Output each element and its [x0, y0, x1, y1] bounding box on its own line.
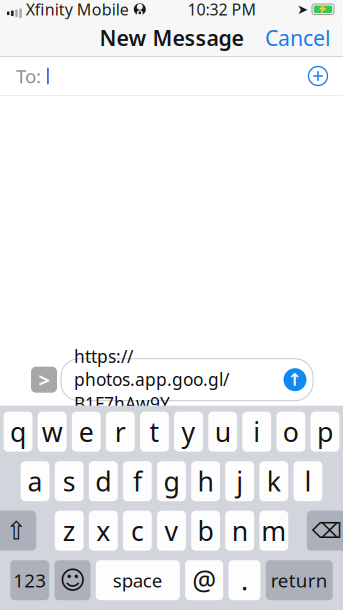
staticText: g	[163, 463, 179, 499]
button[interactable]: space	[96, 560, 180, 600]
staticText: s	[63, 463, 76, 499]
staticText: ⚡	[317, 4, 329, 15]
button[interactable]: q	[4, 412, 32, 452]
button[interactable]: return	[266, 560, 333, 600]
button[interactable]: Delete	[307, 511, 343, 551]
staticText: .	[241, 562, 248, 598]
button[interactable]: s	[55, 461, 84, 501]
staticText: c	[131, 513, 144, 548]
staticText: 123	[13, 568, 46, 593]
staticText: o	[283, 414, 299, 449]
staticText: space	[113, 568, 163, 593]
button[interactable]: l	[293, 461, 322, 501]
button[interactable]: Send	[280, 365, 310, 395]
button[interactable]: g	[157, 461, 186, 501]
staticText: q	[10, 414, 26, 449]
button[interactable]: a	[21, 461, 49, 501]
staticText: https://photos.app.goo.gl/	[74, 345, 229, 391]
button[interactable]: @	[185, 560, 223, 600]
button[interactable]: t	[140, 412, 169, 452]
staticText: u	[215, 414, 231, 449]
button[interactable]: y	[174, 412, 203, 452]
staticText: To:	[16, 64, 41, 88]
staticText: m	[261, 513, 286, 548]
staticText: Xfinity Mobile	[26, 0, 129, 20]
button[interactable]: i	[242, 412, 271, 452]
button[interactable]: Emoji	[54, 560, 90, 600]
button[interactable]: o	[276, 412, 305, 452]
button[interactable]: e	[72, 412, 101, 452]
staticText: f	[133, 463, 142, 499]
staticText: ☺	[59, 566, 85, 595]
staticText: ⇧	[6, 516, 27, 545]
staticText: r	[115, 414, 126, 449]
staticText: e	[79, 414, 94, 449]
button[interactable]: Shift	[0, 511, 36, 551]
staticText: 10:32 PM	[187, 0, 256, 20]
staticText: return	[271, 568, 328, 593]
button[interactable]: j	[225, 461, 254, 501]
button[interactable]: 123	[10, 560, 49, 600]
staticText: B1F7hAw9Y	[74, 392, 170, 415]
staticText: h	[198, 463, 214, 499]
button[interactable]: c	[123, 511, 152, 551]
button[interactable]: u	[208, 412, 237, 452]
button[interactable]: d	[89, 461, 118, 501]
button[interactable]: w	[38, 412, 66, 452]
staticText: y	[181, 414, 195, 449]
staticText: New Message	[99, 24, 243, 52]
staticText: ⌫	[312, 519, 342, 543]
staticText: j	[236, 463, 243, 499]
staticText: d	[95, 463, 111, 499]
button[interactable]: z	[55, 511, 84, 551]
staticText: z	[63, 513, 76, 548]
staticText: w	[42, 414, 63, 449]
button[interactable]: m	[259, 511, 288, 551]
button[interactable]: Cancel	[253, 16, 343, 60]
button[interactable]: b	[191, 511, 220, 551]
staticText: Cancel	[265, 24, 331, 52]
button[interactable]: f	[123, 461, 152, 501]
staticText: x	[96, 513, 110, 548]
button[interactable]: k	[259, 461, 288, 501]
staticText: a	[28, 463, 43, 499]
staticText: t	[149, 414, 159, 449]
staticText: ↑	[287, 370, 302, 390]
staticText: i	[253, 414, 260, 449]
button[interactable]: v	[157, 511, 186, 551]
button[interactable]: h	[191, 461, 220, 501]
button[interactable]: r	[106, 412, 135, 452]
staticText: p	[317, 414, 333, 449]
staticText: >	[38, 366, 49, 393]
staticText: n	[232, 513, 248, 548]
staticText: ➤	[297, 2, 308, 17]
button[interactable]: Show apps	[27, 362, 61, 398]
button[interactable]: p	[311, 412, 339, 452]
staticText: l	[304, 463, 311, 499]
staticText: v	[164, 513, 178, 548]
staticText: k	[267, 463, 281, 499]
staticText: @	[192, 562, 216, 598]
button[interactable]: Add contact	[300, 58, 336, 94]
staticText: b	[198, 513, 214, 548]
button[interactable]: .	[228, 560, 260, 600]
button[interactable]: n	[225, 511, 254, 551]
button[interactable]: x	[89, 511, 118, 551]
